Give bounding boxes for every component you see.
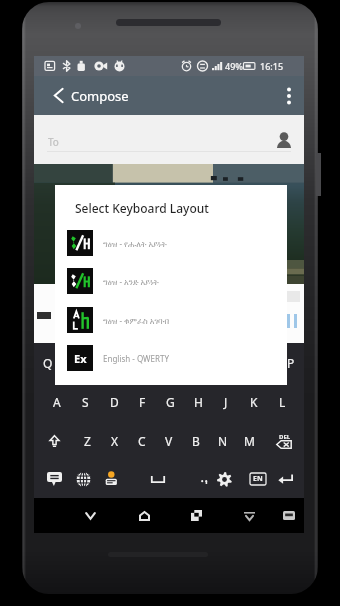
staticText: Select Keyboard Layout bbox=[75, 200, 209, 216]
button[interactable] bbox=[192, 460, 218, 498]
button[interactable]: Home bbox=[127, 498, 161, 533]
staticText: EN bbox=[253, 474, 263, 484]
staticText: W bbox=[69, 355, 81, 371]
staticText: K bbox=[250, 394, 258, 410]
button[interactable]: G bbox=[156, 382, 184, 421]
button[interactable]: A bbox=[42, 382, 71, 421]
staticText: X bbox=[111, 433, 119, 449]
button[interactable]: E bbox=[88, 343, 115, 382]
button[interactable]: Space bbox=[144, 460, 172, 498]
button[interactable]: R bbox=[115, 343, 142, 382]
button[interactable]: Emoji bbox=[41, 460, 67, 498]
button[interactable]: Settings bbox=[211, 460, 237, 498]
button[interactable]: M bbox=[236, 421, 263, 460]
staticText: 16:15 bbox=[260, 60, 284, 72]
button[interactable]: Input language English bbox=[245, 460, 271, 498]
button[interactable]: ግዕዝ - የሑለት አይነት bbox=[55, 224, 287, 262]
button[interactable]: K bbox=[240, 382, 268, 421]
button[interactable]: H bbox=[184, 382, 212, 421]
staticText: L bbox=[279, 394, 286, 410]
button[interactable]: V bbox=[155, 421, 182, 460]
button[interactable]: D bbox=[100, 382, 128, 421]
staticText: J bbox=[224, 394, 228, 410]
button[interactable]: N bbox=[209, 421, 236, 460]
button[interactable]: W bbox=[61, 343, 88, 382]
button[interactable]: S bbox=[71, 382, 100, 421]
button[interactable]: ግዕዝ - ቁምፈስ አገባብ bbox=[55, 301, 287, 339]
staticText: E bbox=[98, 355, 105, 371]
button[interactable]: Language bbox=[70, 460, 96, 498]
button[interactable]: Select contact bbox=[272, 128, 296, 152]
button[interactable]: Hide keyboard bbox=[232, 498, 266, 533]
staticText: ግዕዝ - ቁምፈስ አገባብ bbox=[103, 315, 170, 326]
button[interactable]: Back bbox=[42, 76, 74, 115]
button[interactable]: J bbox=[212, 382, 240, 421]
button[interactable]: Back bbox=[73, 498, 107, 533]
button[interactable]: P bbox=[277, 343, 304, 382]
staticText: To bbox=[48, 135, 59, 149]
staticText: F bbox=[139, 394, 146, 410]
button[interactable]: ግዕዝ - አንድ አይነት bbox=[55, 262, 287, 300]
button[interactable]: T bbox=[142, 343, 169, 382]
staticText: R bbox=[125, 355, 133, 371]
staticText: ግዕዝ - አንድ አይነት bbox=[103, 276, 159, 287]
button[interactable]: L bbox=[268, 382, 296, 421]
button[interactable]: Q bbox=[34, 343, 61, 382]
staticText: P bbox=[287, 355, 295, 371]
button[interactable]: X bbox=[101, 421, 128, 460]
staticText: V bbox=[165, 433, 173, 449]
button[interactable]: Keyboard bbox=[272, 498, 306, 533]
staticText: Q bbox=[43, 355, 53, 371]
button[interactable]: Recent apps bbox=[179, 498, 213, 533]
staticText: M bbox=[244, 433, 255, 449]
button[interactable]: Shift bbox=[34, 421, 74, 460]
staticText: T bbox=[152, 355, 159, 371]
staticText: DEL bbox=[279, 433, 291, 441]
staticText: C bbox=[138, 433, 146, 449]
staticText: Compose bbox=[71, 87, 129, 105]
button[interactable]: Delete bbox=[263, 421, 304, 460]
button[interactable]: Switch keyboard bbox=[98, 460, 124, 498]
staticText: H bbox=[194, 394, 203, 410]
button[interactable]: B bbox=[182, 421, 209, 460]
staticText: A bbox=[53, 394, 61, 410]
staticText: English - QWERTY bbox=[103, 353, 169, 364]
staticText: D bbox=[110, 394, 119, 410]
button[interactable]: Enter bbox=[272, 460, 298, 498]
staticText: G bbox=[166, 394, 175, 410]
button[interactable]: Z bbox=[74, 421, 101, 460]
button[interactable]: Ex bbox=[55, 339, 287, 377]
button[interactable]: More options bbox=[274, 76, 304, 115]
staticText: S bbox=[82, 394, 89, 410]
staticText: ግዕዝ - የሑለት አይነት bbox=[103, 238, 167, 249]
button[interactable]: C bbox=[128, 421, 155, 460]
staticText: Ex bbox=[74, 351, 87, 366]
button[interactable]: F bbox=[128, 382, 156, 421]
staticText: B bbox=[192, 433, 200, 449]
staticText: N bbox=[218, 433, 228, 449]
staticText: 49% bbox=[225, 60, 243, 72]
staticText: Z bbox=[84, 433, 91, 449]
